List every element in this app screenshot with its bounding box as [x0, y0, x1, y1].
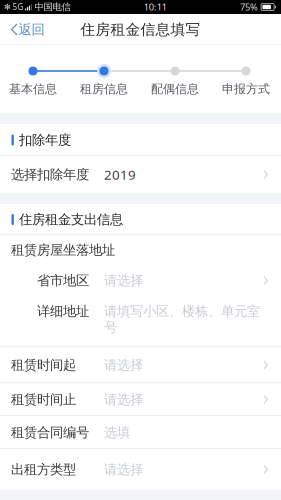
- staticText: 租赁合同编号: [11, 424, 89, 441]
- staticText: 扣除年度: [19, 132, 71, 148]
- staticText: ✻: [4, 2, 11, 12]
- staticText: 出租方类型: [11, 461, 76, 478]
- button[interactable]: 租赁时间止: [0, 383, 281, 416]
- staticText: 2019: [104, 166, 136, 183]
- staticText: 住房租金支出信息: [19, 211, 123, 228]
- staticText: 基本信息: [9, 82, 57, 96]
- staticText: 配偶信息: [151, 82, 199, 96]
- button[interactable]: 返回: [0, 14, 54, 45]
- staticText: 10:11: [144, 1, 167, 13]
- staticText: 选填: [104, 424, 130, 441]
- staticText: 中国电信: [34, 1, 70, 13]
- staticText: 请选择: [104, 461, 143, 478]
- staticText: 租赁房屋坐落地址: [11, 242, 115, 258]
- staticText: 请选择: [104, 272, 143, 289]
- staticText: 租房信息: [80, 82, 128, 96]
- button[interactable]: 出租方类型: [0, 449, 281, 490]
- staticText: 省市地区: [37, 272, 89, 289]
- staticText: 详细地址: [37, 303, 89, 319]
- staticText: 请选择: [104, 391, 143, 408]
- staticText: 租赁时间止: [11, 391, 76, 408]
- button[interactable]: 选择扣除年度: [0, 156, 281, 193]
- button[interactable]: 租赁时间起: [0, 347, 281, 383]
- staticText: 5G: [12, 2, 23, 12]
- staticText: 返回: [18, 21, 44, 38]
- button[interactable]: 详细地址: [0, 296, 281, 347]
- staticText: 请选择: [104, 357, 143, 373]
- staticText: 选择扣除年度: [11, 166, 89, 183]
- staticText: 75%: [240, 1, 258, 13]
- staticText: 住房租金信息填写: [80, 20, 200, 38]
- staticText: 申报方式: [222, 82, 270, 96]
- button[interactable]: 省市地区: [0, 265, 281, 296]
- staticText: 请填写小区、楼栋、单元室号: [104, 303, 260, 336]
- button[interactable]: 租赁合同编号: [0, 416, 281, 449]
- staticText: 租赁时间起: [11, 357, 76, 373]
